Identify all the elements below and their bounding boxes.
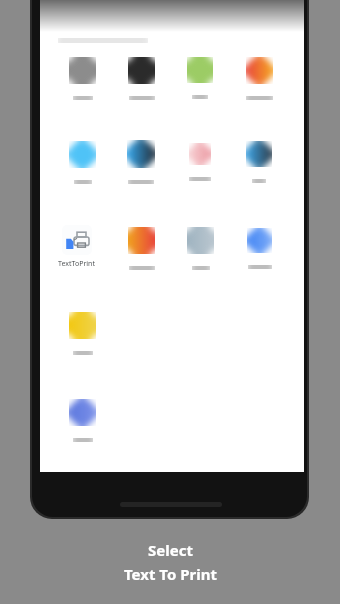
button[interactable]: App <box>247 228 272 271</box>
button[interactable]: App <box>246 141 272 185</box>
button[interactable]: App <box>128 57 155 102</box>
button[interactable]: App <box>189 143 211 183</box>
button[interactable]: App <box>69 399 96 444</box>
button[interactable]: TextToPrint <box>58 225 106 269</box>
staticText: TextToPrint <box>58 259 95 269</box>
button[interactable]: App <box>69 312 96 357</box>
staticText: Text To Print <box>124 564 217 584</box>
staticText: Select <box>148 540 193 560</box>
button[interactable]: App <box>187 227 214 272</box>
button[interactable]: App <box>246 57 273 102</box>
button[interactable]: App <box>69 141 96 186</box>
button[interactable]: App <box>69 57 96 102</box>
button[interactable]: App <box>127 140 155 186</box>
button[interactable]: App <box>128 227 155 272</box>
button[interactable]: App <box>187 57 213 101</box>
